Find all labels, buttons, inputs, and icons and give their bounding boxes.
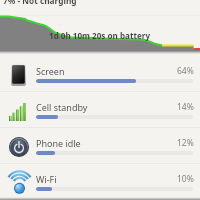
other: Wi-Fi bbox=[8, 170, 31, 194]
staticText: Wi-Fi bbox=[36, 173, 57, 185]
staticText: 10% bbox=[177, 173, 194, 185]
other: Cell standby bbox=[9, 103, 26, 121]
other: Screen bbox=[11, 63, 26, 86]
button[interactable]: Screen bbox=[0, 56, 200, 92]
staticText: 1d 0h 10m 20s on battery bbox=[49, 30, 151, 41]
staticText: 7% - Not charging bbox=[3, 0, 77, 6]
staticText: Cell standby bbox=[36, 101, 88, 113]
staticText: 12% bbox=[177, 137, 194, 149]
button[interactable]: Cell standby bbox=[0, 92, 200, 128]
staticText: 14% bbox=[177, 101, 194, 113]
staticText: Phone idle bbox=[36, 137, 81, 149]
staticText: Screen bbox=[36, 65, 65, 77]
staticText: 64% bbox=[177, 65, 194, 77]
button[interactable]: Phone idle bbox=[0, 128, 200, 164]
other: Phone idle bbox=[9, 137, 29, 157]
button[interactable]: Wi-Fi bbox=[0, 164, 200, 200]
